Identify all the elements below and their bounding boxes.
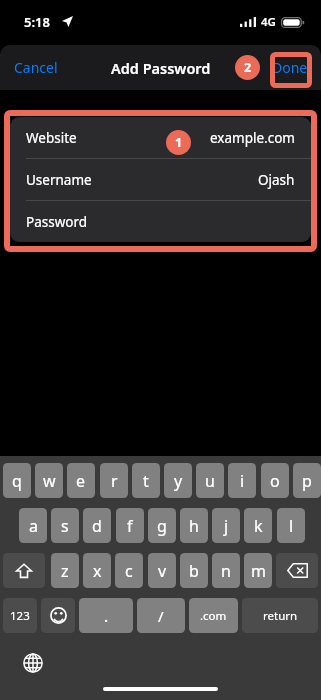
button[interactable]: m xyxy=(244,553,272,588)
button[interactable]: Backspace xyxy=(276,553,318,588)
staticText: e xyxy=(76,470,86,492)
button[interactable]: f xyxy=(116,508,144,543)
staticText: y xyxy=(174,470,183,492)
staticText: r xyxy=(111,470,118,492)
button[interactable]: s xyxy=(51,508,79,543)
staticText: p xyxy=(302,470,312,492)
staticText: 1 xyxy=(175,134,183,151)
button[interactable]: Cancel xyxy=(9,53,63,82)
button[interactable]: Period xyxy=(79,598,133,633)
staticText: k xyxy=(254,515,263,537)
staticText: a xyxy=(29,515,38,537)
button[interactable]: k xyxy=(244,508,272,543)
button[interactable]: a xyxy=(19,508,47,543)
staticText: s xyxy=(61,515,69,537)
button[interactable]: c xyxy=(115,553,143,588)
staticText: u xyxy=(205,470,215,492)
button[interactable]: y xyxy=(164,463,192,498)
button[interactable]: o xyxy=(261,463,289,498)
button[interactable]: x xyxy=(83,553,111,588)
staticText: b xyxy=(189,560,199,582)
button[interactable]: j xyxy=(212,508,240,543)
button[interactable]: p xyxy=(293,463,321,498)
staticText: v xyxy=(158,560,167,582)
button[interactable]: Slash xyxy=(137,598,185,633)
button[interactable]: l xyxy=(277,508,305,543)
button[interactable]: z xyxy=(51,553,79,588)
staticText: n xyxy=(221,560,231,582)
button[interactable]: b xyxy=(180,553,208,588)
button[interactable]: Username xyxy=(10,159,311,200)
button[interactable]: h xyxy=(180,508,208,543)
staticText: .com xyxy=(200,608,227,624)
staticText: Done xyxy=(272,58,308,77)
staticText: 5:18 xyxy=(24,13,50,31)
button[interactable]: t xyxy=(132,463,160,498)
button[interactable]: Done xyxy=(266,53,314,82)
staticText: z xyxy=(61,560,69,582)
staticText: 2 xyxy=(244,59,252,76)
staticText: j xyxy=(224,515,229,537)
button[interactable]: Return xyxy=(242,598,318,633)
button[interactable]: n xyxy=(212,553,240,588)
staticText: h xyxy=(189,515,199,537)
button[interactable]: q xyxy=(3,463,31,498)
button[interactable]: Emoji xyxy=(41,598,75,633)
staticText: / xyxy=(158,606,164,626)
staticText: Password xyxy=(26,213,88,231)
staticText: Add Password xyxy=(111,58,211,78)
button[interactable]: e xyxy=(67,463,95,498)
staticText: t xyxy=(143,470,149,492)
button[interactable]: v xyxy=(148,553,176,588)
staticText: example.com xyxy=(210,129,295,147)
staticText: Username xyxy=(26,171,92,189)
staticText: q xyxy=(12,470,22,492)
staticText: 123 xyxy=(10,608,30,624)
button[interactable]: Website xyxy=(10,117,311,158)
staticText: i xyxy=(240,470,245,492)
staticText: Cancel xyxy=(14,58,58,77)
staticText: c xyxy=(125,560,133,582)
staticText: f xyxy=(127,515,133,537)
button[interactable]: Dot com xyxy=(189,598,238,633)
staticText: d xyxy=(92,515,102,537)
staticText: Ojash xyxy=(258,171,295,189)
button[interactable]: Numbers xyxy=(3,598,37,633)
staticText: g xyxy=(157,515,167,537)
staticText: Website xyxy=(26,129,77,147)
staticText: 4G xyxy=(261,14,276,30)
button[interactable]: u xyxy=(196,463,224,498)
button[interactable]: g xyxy=(148,508,176,543)
staticText: m xyxy=(251,560,266,582)
button[interactable]: Switch keyboard language xyxy=(20,650,46,676)
button[interactable]: Password xyxy=(10,201,311,242)
staticText: . xyxy=(104,606,109,626)
staticText: w xyxy=(43,470,56,492)
staticText: x xyxy=(93,560,102,582)
button[interactable]: d xyxy=(83,508,111,543)
button[interactable]: w xyxy=(35,463,63,498)
button[interactable]: i xyxy=(228,463,256,498)
staticText: o xyxy=(270,470,280,492)
staticText: l xyxy=(289,515,294,537)
staticText: return xyxy=(263,608,298,624)
button[interactable]: r xyxy=(100,463,128,498)
button[interactable]: Shift xyxy=(3,553,45,588)
